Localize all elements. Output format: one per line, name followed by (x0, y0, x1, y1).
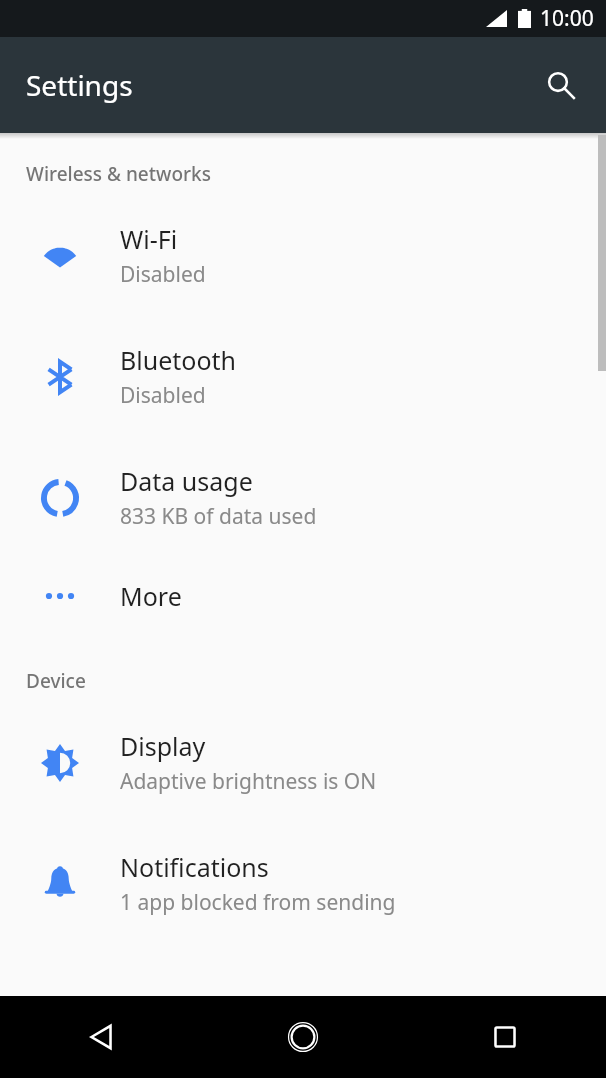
button[interactable]: Display (0, 702, 606, 823)
button[interactable]: Back (0, 996, 202, 1078)
staticText: Device (26, 668, 86, 694)
staticText: Display (120, 729, 206, 763)
staticText: Wi-Fi (120, 222, 178, 256)
staticText: Notifications (120, 850, 269, 884)
staticText: Settings (26, 66, 133, 104)
button[interactable]: Bluetooth (0, 316, 606, 437)
staticText: Bluetooth (120, 343, 237, 377)
button[interactable]: Wi-Fi (0, 195, 606, 316)
button[interactable]: Search (534, 58, 588, 112)
staticText: 1 app blocked from sending (120, 888, 396, 917)
staticText: Disabled (120, 260, 206, 289)
staticText: Disabled (120, 381, 206, 410)
staticText: 833 KB of data used (120, 502, 317, 531)
button[interactable]: Notifications (0, 823, 606, 944)
staticText: Adaptive brightness is ON (120, 767, 377, 796)
button[interactable]: Recents (404, 996, 606, 1078)
staticText: Data usage (120, 464, 253, 498)
staticText: Wireless & networks (26, 161, 211, 187)
button[interactable]: More (0, 558, 606, 634)
button[interactable]: Data usage (0, 437, 606, 558)
staticText: 10:00 (540, 4, 594, 33)
staticText: More (120, 579, 182, 613)
button[interactable]: Home (202, 996, 404, 1078)
